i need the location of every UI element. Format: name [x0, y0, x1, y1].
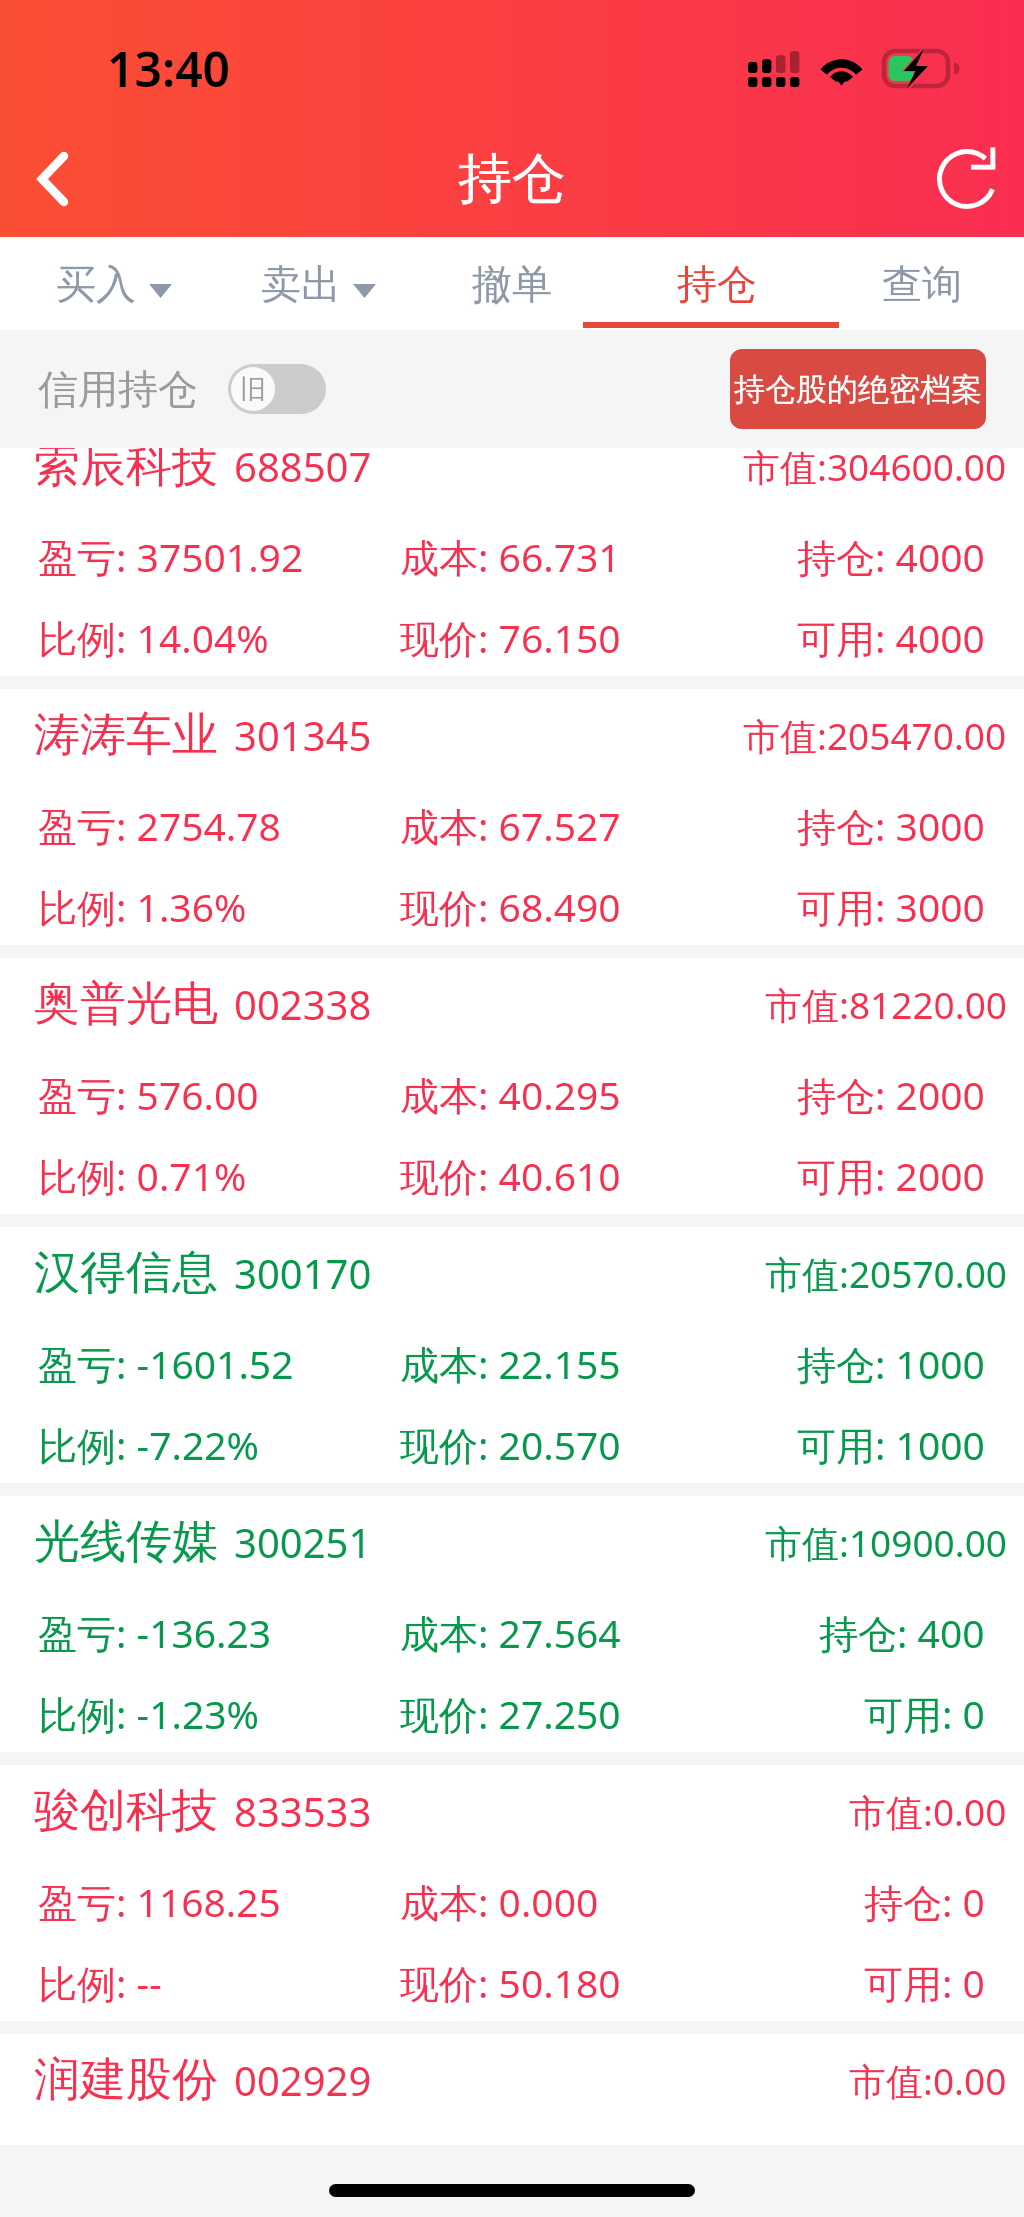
button[interactable]: Back [5, 129, 105, 229]
staticText: 市值:20570.00 [765, 1248, 1007, 1299]
staticText: 市值:81220.00 [765, 979, 1007, 1030]
staticText: 301345 [234, 708, 372, 762]
staticText: 可用: 0 [864, 1956, 985, 2009]
staticText: 买入 [56, 259, 136, 309]
staticText: 比例: -- [38, 1956, 162, 2009]
staticText: 市值:0.00 [849, 1786, 1007, 1837]
staticText: 现价: 20.570 [400, 1418, 621, 1471]
button[interactable]: 奥普光电 [0, 958, 1024, 1214]
staticText: 市值:205470.00 [743, 710, 1007, 761]
staticText: 002929 [234, 2053, 372, 2107]
staticText: 现价: 27.250 [400, 1687, 621, 1740]
staticText: 成本: 22.155 [400, 1337, 621, 1390]
button[interactable]: Refresh [917, 129, 1017, 229]
staticText: 撤单 [472, 259, 552, 309]
staticText: 信用持仓 [38, 364, 198, 414]
staticText: 持仓: 2000 [797, 1068, 985, 1121]
staticText: 持仓股的绝密档案 [734, 370, 982, 409]
button[interactable]: Toggle credit holdings [228, 364, 326, 414]
button[interactable]: 骏创科技 [0, 1765, 1024, 2021]
staticText: 市值:304600.00 [743, 448, 1007, 492]
staticText: 市值:10900.00 [765, 1517, 1007, 1568]
staticText: 比例: 1.36% [38, 880, 247, 933]
staticText: 持仓 [458, 145, 566, 213]
staticText: 持仓: 4000 [797, 530, 985, 583]
staticText: 比例: 0.71% [38, 1149, 247, 1202]
staticText: 可用: 3000 [797, 880, 985, 933]
staticText: 骏创科技 [34, 1782, 218, 1840]
staticText: 成本: 40.295 [400, 1068, 621, 1121]
staticText: 盈亏: 2754.78 [38, 799, 281, 852]
button[interactable]: 光线传媒 [0, 1496, 1024, 1752]
button[interactable]: 卖出 [204, 237, 409, 330]
staticText: 688507 [234, 448, 372, 493]
staticText: 比例: -7.22% [38, 1418, 259, 1471]
staticText: 002338 [234, 977, 372, 1031]
staticText: 持仓: 400 [819, 1606, 985, 1659]
staticText: 可用: 1000 [797, 1418, 985, 1471]
staticText: 盈亏: 1168.25 [38, 1875, 281, 1928]
staticText: 比例: 14.04% [38, 611, 269, 664]
button[interactable]: 查询 [819, 237, 1024, 330]
staticText: 奥普光电 [34, 975, 218, 1033]
staticText: 持仓: 1000 [797, 1337, 985, 1390]
button[interactable]: 持仓 [614, 237, 819, 330]
staticText: 市值:0.00 [849, 2055, 1007, 2106]
button[interactable]: 持仓股的绝密档案 [730, 349, 986, 429]
staticText: 300251 [234, 1515, 372, 1569]
staticText: 盈亏: -136.23 [38, 1606, 272, 1659]
staticText: 润建股份 [34, 2051, 218, 2109]
staticText: 成本: 0.000 [400, 1875, 599, 1928]
staticText: 旧 [240, 373, 266, 406]
staticText: 查询 [882, 259, 962, 309]
button[interactable]: 撤单 [409, 237, 614, 330]
staticText: 汉得信息 [34, 1244, 218, 1302]
staticText: 卖出 [261, 259, 341, 309]
button[interactable]: 汉得信息 [0, 1227, 1024, 1483]
button[interactable]: 买入 [0, 237, 204, 330]
button[interactable]: 润建股份 [0, 2034, 1024, 2117]
staticText: 光线传媒 [34, 1513, 218, 1571]
staticText: 持仓 [677, 259, 757, 309]
staticText: 可用: 0 [864, 1687, 985, 1740]
staticText: 持仓: 3000 [797, 799, 985, 852]
staticText: 现价: 50.180 [400, 1956, 621, 2009]
staticText: 比例: -1.23% [38, 1687, 259, 1740]
staticText: 涛涛车业 [34, 706, 218, 764]
staticText: 盈亏: 576.00 [38, 1068, 259, 1121]
staticText: 可用: 4000 [797, 611, 985, 664]
staticText: 833533 [234, 1784, 372, 1838]
button[interactable]: 涛涛车业 [0, 689, 1024, 945]
staticText: 成本: 27.564 [400, 1606, 621, 1659]
staticText: 可用: 2000 [797, 1149, 985, 1202]
staticText: 现价: 76.150 [400, 611, 621, 664]
staticText: 成本: 67.527 [400, 799, 621, 852]
staticText: 现价: 40.610 [400, 1149, 621, 1202]
staticText: 盈亏: -1601.52 [38, 1337, 294, 1390]
button[interactable]: 索辰科技 [0, 448, 1024, 676]
staticText: 盈亏: 37501.92 [38, 530, 304, 583]
staticText: 持仓: 0 [864, 1875, 985, 1928]
staticText: 索辰科技 [34, 448, 218, 495]
staticText: 现价: 68.490 [400, 880, 621, 933]
staticText: 13:40 [107, 36, 231, 101]
staticText: 成本: 66.731 [400, 530, 621, 583]
staticText: 300170 [234, 1246, 372, 1300]
